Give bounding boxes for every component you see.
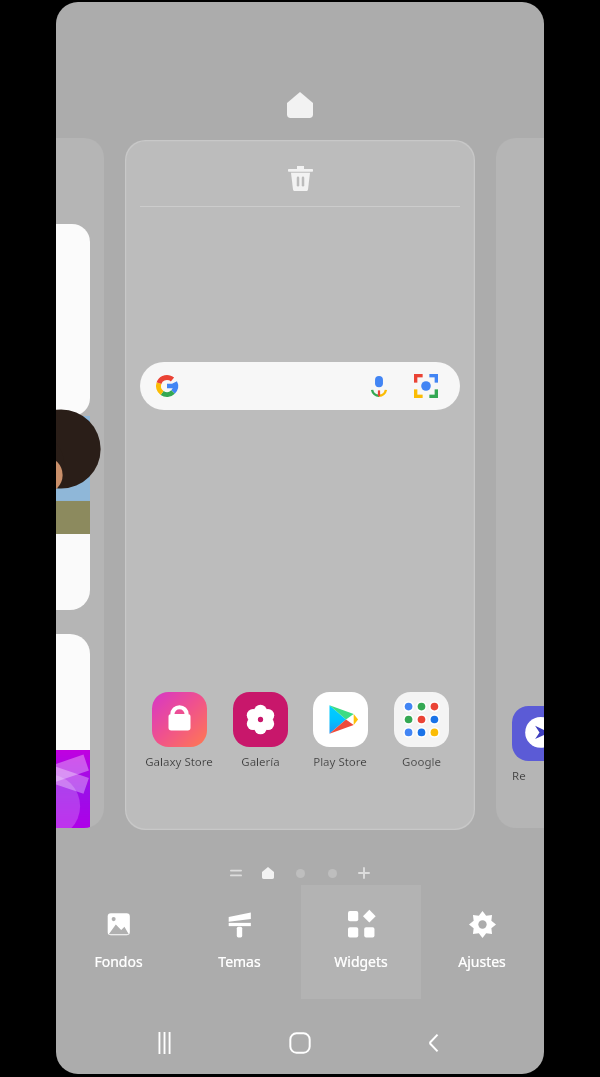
button[interactable]: Widgets: [301, 885, 421, 999]
button[interactable]: Page 2: [291, 864, 309, 882]
button[interactable]: Galería: [223, 692, 297, 770]
button[interactable]: Play Store: [303, 692, 377, 770]
button[interactable]: Remove page: [278, 156, 322, 200]
button[interactable]: Galaxy Store: [142, 692, 216, 770]
button[interactable]: Re: [496, 138, 544, 828]
button[interactable]: Add page: [355, 864, 373, 882]
staticText: Google: [402, 754, 441, 770]
staticText: Fondos: [94, 952, 143, 971]
button[interactable]: Fondos: [58, 885, 178, 999]
button[interactable]: Page 3: [323, 864, 341, 882]
staticText: Ajustes: [458, 952, 506, 971]
staticText: Galaxy Store: [145, 754, 213, 770]
button[interactable]: Temas: [179, 885, 299, 999]
staticText: Re: [512, 768, 526, 784]
button[interactable]: Apps list: [227, 864, 245, 882]
staticText: Temas: [218, 952, 261, 971]
button[interactable]: Recent apps: [142, 1019, 190, 1067]
button[interactable]: Ajustes: [422, 885, 542, 999]
button[interactable]: Back: [410, 1019, 458, 1067]
button[interactable]: Google: [384, 692, 458, 770]
button[interactable]: [140, 362, 460, 410]
button[interactable]: [56, 138, 104, 828]
staticText: Play Store: [313, 754, 367, 770]
staticText: Widgets: [334, 952, 388, 971]
button[interactable]: Home page: [259, 864, 277, 882]
button[interactable]: Home: [276, 1019, 324, 1067]
staticText: Galería: [241, 754, 280, 770]
button[interactable]: Home screen: [283, 88, 317, 122]
